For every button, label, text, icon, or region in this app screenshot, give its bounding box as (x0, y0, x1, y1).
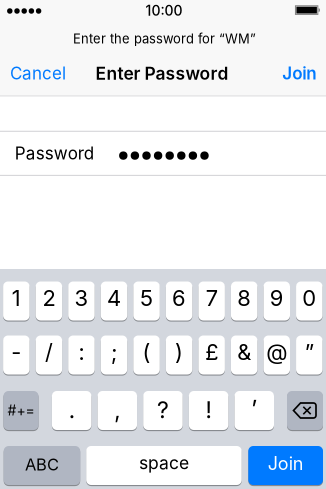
button[interactable]: ) (166, 335, 192, 374)
button[interactable]: ! (189, 391, 228, 430)
staticText: ? (157, 396, 169, 424)
button[interactable]: #+= (3, 391, 38, 430)
staticText: space (139, 452, 189, 474)
button[interactable]: Delete (287, 391, 323, 430)
button[interactable]: £ (198, 335, 225, 374)
staticText: Enter the password for “WM” (73, 31, 256, 47)
staticText: #+= (7, 402, 34, 419)
button[interactable]: 8 (231, 281, 257, 320)
staticText: 5 (140, 285, 153, 311)
staticText: 6 (172, 285, 186, 311)
button[interactable]: , (97, 391, 137, 430)
button[interactable]: Password (0, 132, 326, 175)
staticText: ” (305, 339, 314, 365)
button[interactable]: ” (296, 335, 323, 374)
staticText: 2 (42, 285, 55, 311)
button[interactable]: 9 (263, 281, 290, 320)
staticText: ! (206, 396, 212, 424)
button[interactable]: Join (196, 61, 316, 85)
button[interactable]: Join (248, 446, 323, 485)
staticText: Cancel (10, 63, 66, 84)
staticText: Join (282, 63, 316, 84)
staticText: £ (205, 339, 218, 365)
staticText: 8 (237, 285, 251, 311)
button[interactable]: - (3, 335, 30, 374)
staticText: @ (266, 339, 287, 365)
staticText: / (45, 339, 53, 365)
button[interactable]: Cancel (10, 61, 130, 85)
staticText: ’ (251, 394, 257, 423)
button[interactable]: : (68, 335, 95, 374)
button[interactable]: ’ (234, 391, 274, 430)
button[interactable]: / (36, 335, 62, 374)
button[interactable]: ABC (4, 446, 80, 485)
staticText: 1 (12, 285, 21, 311)
button[interactable]: space (86, 446, 242, 485)
button[interactable]: 2 (36, 281, 62, 320)
staticText: : (78, 339, 84, 365)
button[interactable]: 5 (133, 281, 160, 320)
staticText: . (69, 396, 75, 424)
staticText: 0 (302, 285, 316, 311)
staticText: - (11, 339, 21, 365)
staticText: 7 (206, 285, 218, 311)
button[interactable]: 3 (68, 281, 95, 320)
staticText: 4 (107, 285, 121, 311)
staticText: 3 (74, 285, 88, 311)
button[interactable]: 4 (101, 281, 127, 320)
staticText: Password (15, 143, 94, 164)
button[interactable]: ? (143, 391, 183, 430)
staticText: Enter Password (95, 63, 228, 84)
button[interactable]: @ (263, 335, 290, 374)
staticText: 9 (270, 285, 284, 311)
staticText: ABC (25, 454, 59, 474)
staticText: 10:00 (145, 2, 182, 19)
button[interactable]: ; (101, 335, 127, 374)
staticText: , (114, 396, 120, 424)
staticText: ; (111, 339, 117, 365)
staticText: Join (268, 453, 304, 474)
button[interactable]: 6 (166, 281, 192, 320)
staticText: ) (175, 339, 183, 365)
button[interactable]: & (231, 335, 257, 374)
button[interactable]: 7 (198, 281, 225, 320)
staticText: ( (142, 339, 150, 365)
button[interactable]: 0 (296, 281, 323, 320)
button[interactable]: 1 (3, 281, 30, 320)
staticText: & (237, 339, 251, 365)
button[interactable]: . (52, 391, 91, 430)
button[interactable]: ( (133, 335, 160, 374)
